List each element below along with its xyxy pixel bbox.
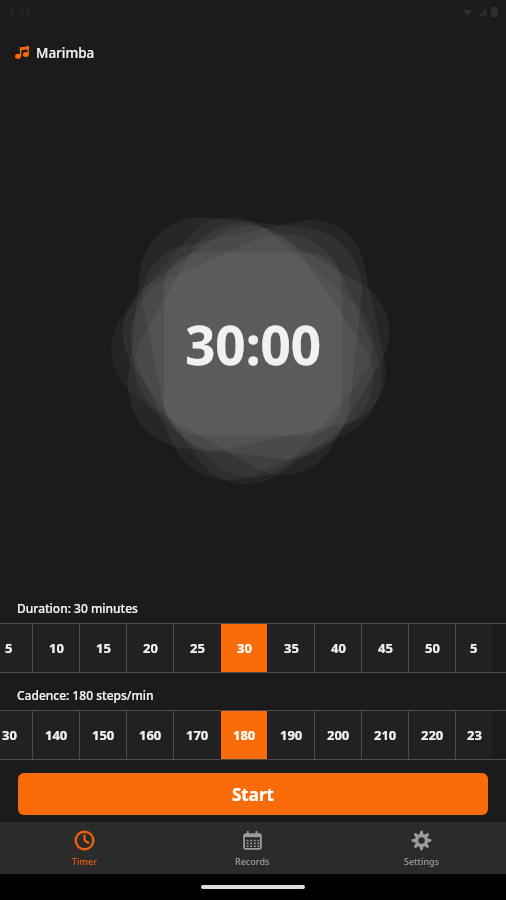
staticText: 30:00: [185, 308, 322, 380]
staticText: 35: [284, 639, 299, 657]
staticText: 5: [470, 639, 478, 657]
staticText: 50: [425, 639, 440, 657]
button[interactable]: 160: [127, 710, 173, 760]
button[interactable]: 200: [315, 710, 361, 760]
staticText: 40: [331, 639, 346, 657]
button[interactable]: 50: [409, 623, 455, 673]
staticText: Start: [232, 783, 274, 806]
staticText: 170: [186, 726, 209, 744]
button[interactable]: 190: [268, 710, 314, 760]
staticText: 23: [467, 726, 482, 744]
button[interactable]: 30: [0, 710, 32, 760]
button[interactable]: 5: [0, 623, 32, 673]
button[interactable]: 210: [362, 710, 408, 760]
staticText: Marimba: [36, 44, 95, 62]
button[interactable]: 180: [221, 710, 267, 760]
button[interactable]: 23: [456, 710, 492, 760]
staticText: 9:35: [9, 4, 31, 19]
staticText: 220: [421, 726, 444, 744]
button[interactable]: 25: [174, 623, 220, 673]
button[interactable]: Start: [18, 773, 488, 815]
button[interactable]: 45: [362, 623, 408, 673]
button[interactable]: 150: [80, 710, 126, 760]
button[interactable]: 20: [127, 623, 173, 673]
staticText: Duration: 30 minutes: [17, 600, 138, 616]
staticText: 140: [45, 726, 68, 744]
button[interactable]: Timer: [0, 822, 168, 874]
button[interactable]: 220: [409, 710, 455, 760]
button[interactable]: 40: [315, 623, 361, 673]
button[interactable]: 35: [268, 623, 314, 673]
staticText: 30: [237, 639, 252, 657]
staticText: 210: [374, 726, 397, 744]
button[interactable]: 5: [456, 623, 492, 673]
staticText: 30: [2, 726, 17, 744]
staticText: Timer: [72, 855, 97, 867]
staticText: 45: [378, 639, 393, 657]
button[interactable]: Settings: [337, 822, 506, 874]
staticText: 200: [327, 726, 350, 744]
staticText: Cadence: 180 steps/min: [17, 687, 154, 703]
button[interactable]: 140: [33, 710, 79, 760]
staticText: 190: [280, 726, 303, 744]
staticText: 25: [190, 639, 205, 657]
button[interactable]: 10: [33, 623, 79, 673]
staticText: 15: [96, 639, 111, 657]
staticText: 5: [5, 639, 13, 657]
button[interactable]: 170: [174, 710, 220, 760]
staticText: Settings: [404, 855, 440, 867]
staticText: 160: [139, 726, 162, 744]
staticText: 10: [49, 639, 64, 657]
staticText: 150: [92, 726, 115, 744]
button[interactable]: Records: [168, 822, 337, 874]
staticText: 20: [143, 639, 158, 657]
button[interactable]: 30: [221, 623, 267, 673]
staticText: 180: [233, 726, 256, 744]
staticText: Records: [235, 855, 270, 867]
button[interactable]: 15: [80, 623, 126, 673]
